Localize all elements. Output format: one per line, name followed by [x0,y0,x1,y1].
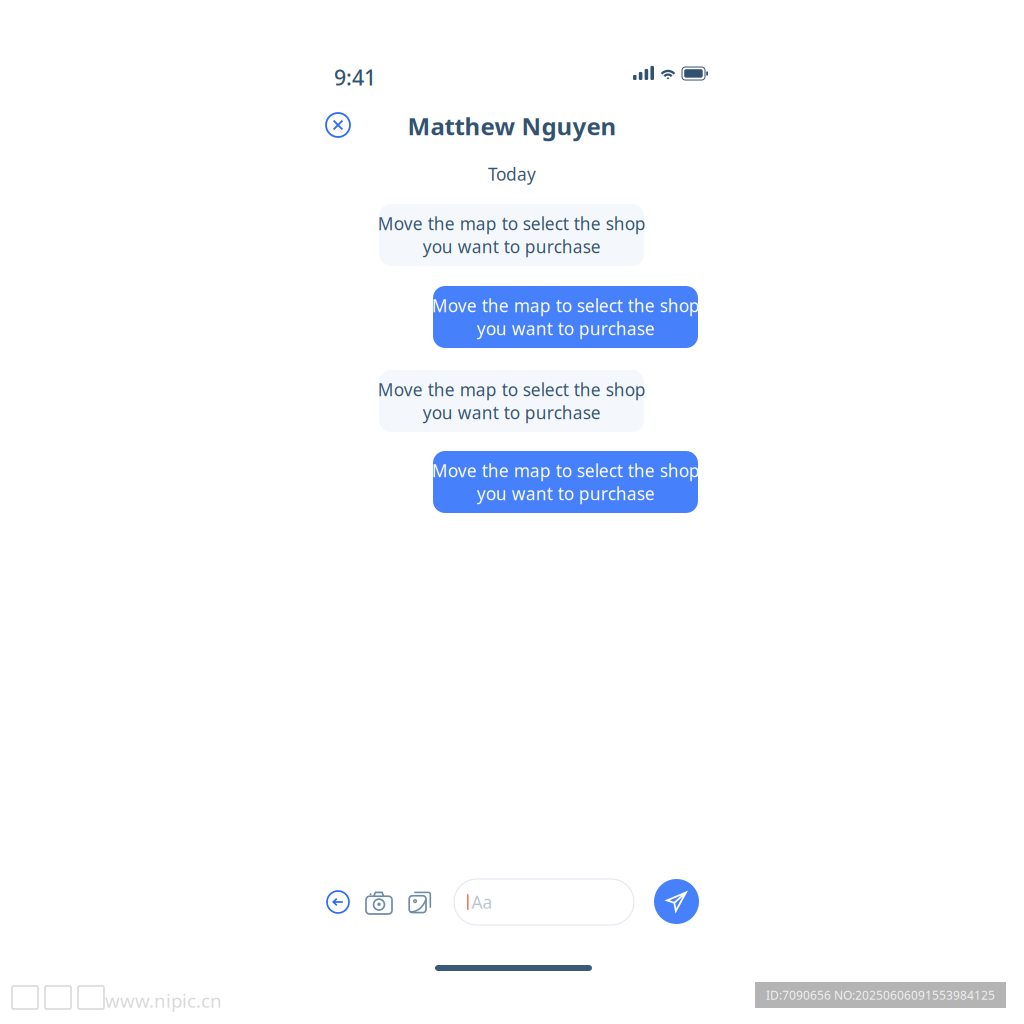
staticText: Move the map to select the shop you want… [431,459,699,505]
staticText: Move the map to select the shop you want… [377,378,645,424]
staticText: Aa [472,890,493,913]
staticText: www.nipic.cn [105,988,222,1013]
button[interactable]: Camera [366,890,392,914]
staticText: 9:41 [334,63,376,91]
button[interactable]: Send [654,879,699,924]
button[interactable]: Move the map to select the shop you want… [433,286,698,348]
staticText: ID:7090656 NO:20250606091553984125 [766,987,995,1003]
button[interactable]: Back [326,890,350,914]
button[interactable]: Aa [454,879,634,925]
button[interactable]: Close [325,112,351,138]
staticText: Move the map to select the shop you want… [377,212,645,258]
button[interactable]: Move the map to select the shop you want… [379,204,644,266]
staticText: Today [488,162,536,185]
staticText: Move the map to select the shop you want… [431,294,699,340]
button[interactable]: Move the map to select the shop you want… [433,451,698,513]
staticText: Matthew Nguyen [407,110,616,142]
button[interactable]: Move the map to select the shop you want… [379,370,644,432]
button[interactable]: Photos [408,890,432,914]
